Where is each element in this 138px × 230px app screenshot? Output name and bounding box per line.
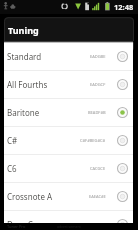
staticText: BEADF#B <box>88 110 106 115</box>
staticText: 12:48 <box>114 2 134 12</box>
staticText: EADGCF <box>90 82 106 87</box>
staticText: EADGBE <box>90 54 106 59</box>
staticText: Baritone <box>7 107 40 118</box>
other: Select tuning <box>117 51 128 62</box>
button[interactable]: Baritone <box>4 99 133 126</box>
staticText: Tuning <box>8 24 39 36</box>
staticText: CACGCE <box>90 166 106 171</box>
staticText: Drop C <box>7 219 33 223</box>
staticText: C#F#BEG#C# <box>80 138 106 143</box>
button[interactable]: Standard <box>4 43 133 70</box>
staticText: C# <box>7 135 18 146</box>
staticText: C6 <box>7 163 17 174</box>
other: Select tuning <box>117 79 128 90</box>
staticText: EAEAC#E <box>89 194 106 199</box>
other: Select tuning <box>117 107 128 118</box>
button[interactable]: C# <box>4 127 133 154</box>
staticText: Tuner Pro <box>7 224 26 229</box>
other: Select tuning <box>117 219 128 223</box>
button[interactable]: Crossnote A <box>4 183 133 210</box>
other: Select tuning <box>117 191 128 202</box>
other: Select tuning <box>117 135 128 146</box>
other: Select tuning <box>117 163 128 174</box>
button[interactable]: C6 <box>4 155 133 182</box>
staticText: advertisement <box>57 224 81 229</box>
button[interactable]: All Fourths <box>4 71 133 98</box>
staticText: All Fourths <box>7 79 48 90</box>
button[interactable]: Drop C <box>4 211 133 223</box>
staticText: Standard <box>7 51 42 62</box>
staticText: Crossnote A <box>7 191 53 202</box>
